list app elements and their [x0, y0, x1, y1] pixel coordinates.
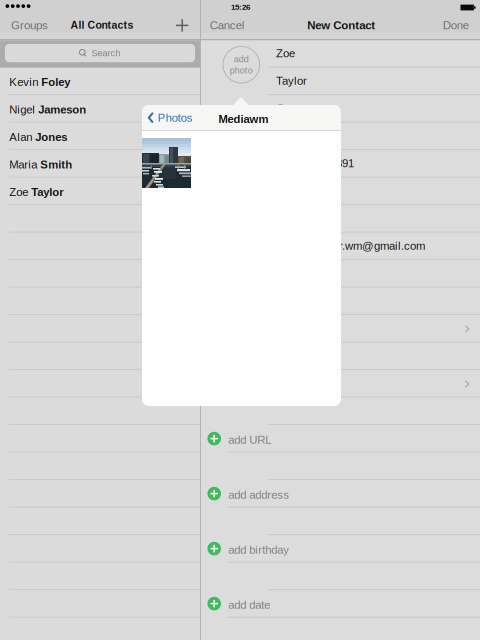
button[interactable]: Company — [200, 95, 480, 123]
staticText: Done — [443, 19, 469, 32]
staticText: photo — [230, 65, 253, 75]
button[interactable] — [200, 178, 480, 205]
staticText: Kevin — [9, 76, 41, 88]
staticText: zoe.mc.taylor.wm@gmail.com — [276, 240, 425, 252]
button[interactable] — [0, 398, 200, 425]
button[interactable]: Zoe — [0, 178, 200, 205]
button[interactable] — [200, 343, 480, 370]
button[interactable]: Done — [443, 20, 469, 30]
staticText: Cancel — [210, 19, 245, 32]
button[interactable]: add URL — [200, 425, 480, 453]
button[interactable]: Nigel — [0, 95, 200, 123]
staticText: Jameson — [38, 103, 86, 116]
button[interactable] — [200, 260, 480, 288]
button[interactable] — [0, 205, 200, 233]
staticText: Nigel — [9, 103, 38, 116]
button[interactable] — [200, 370, 480, 398]
staticText: Jones — [35, 131, 67, 143]
button[interactable]: Photos — [147, 112, 193, 124]
button[interactable]: Search — [5, 44, 195, 62]
button[interactable]: zoe.mc.taylor.wm@gmail.com — [200, 233, 480, 260]
button[interactable] — [0, 288, 200, 315]
button[interactable]: Maria — [0, 150, 200, 178]
button[interactable] — [200, 508, 480, 535]
button[interactable] — [200, 453, 480, 480]
staticText: Taylor — [31, 186, 63, 198]
staticText: New Contact — [307, 19, 375, 32]
button[interactable] — [0, 315, 200, 343]
button[interactable] — [200, 315, 480, 343]
button[interactable] — [0, 370, 200, 398]
staticText: Search — [91, 48, 120, 58]
button[interactable]: add address — [200, 480, 480, 508]
button[interactable] — [200, 563, 480, 590]
staticText: Alan — [9, 131, 35, 143]
button[interactable] — [200, 288, 480, 315]
button[interactable]: Kevin — [0, 68, 200, 95]
button[interactable] — [200, 123, 480, 150]
button[interactable]: Cancel — [210, 20, 245, 30]
staticText: Zoe — [9, 186, 31, 198]
button[interactable]: add birthday — [200, 535, 480, 563]
staticText: Photos — [158, 111, 193, 124]
staticText: add — [234, 54, 249, 64]
staticText: Taylor — [276, 75, 307, 87]
button[interactable]: Alan — [0, 123, 200, 150]
staticText: add date — [228, 599, 270, 611]
button[interactable]: add date — [200, 590, 480, 618]
button[interactable] — [0, 343, 200, 370]
staticText: Company — [276, 102, 323, 115]
staticText: Mediawm — [218, 113, 268, 125]
button[interactable]: 07811 1234 891 — [200, 150, 480, 178]
staticText: Groups — [11, 19, 48, 32]
button[interactable] — [200, 205, 480, 233]
button[interactable] — [0, 233, 200, 260]
staticText: add address — [228, 489, 289, 501]
staticText: All Contacts — [70, 19, 133, 31]
staticText: 15:26 — [231, 3, 250, 11]
button[interactable] — [0, 260, 200, 288]
button[interactable]: Photo from Mediawm — [142, 138, 191, 188]
staticText: Smith — [40, 158, 72, 171]
button[interactable]: Add photo — [222, 46, 260, 84]
button[interactable] — [0, 563, 200, 590]
staticText: 07811 1234 891 — [276, 157, 354, 170]
button[interactable] — [0, 508, 200, 535]
staticText: add birthday — [228, 544, 289, 556]
button[interactable]: Zoe — [200, 40, 480, 68]
staticText: add URL — [228, 434, 271, 446]
button[interactable] — [200, 398, 480, 425]
button[interactable]: Groups — [11, 20, 48, 30]
button[interactable] — [0, 453, 200, 480]
staticText: Maria — [9, 158, 40, 171]
button[interactable]: Taylor — [200, 68, 480, 95]
button[interactable]: Add contact — [176, 19, 188, 32]
staticText: Foley — [41, 76, 70, 88]
staticText: Zoe — [276, 47, 295, 60]
